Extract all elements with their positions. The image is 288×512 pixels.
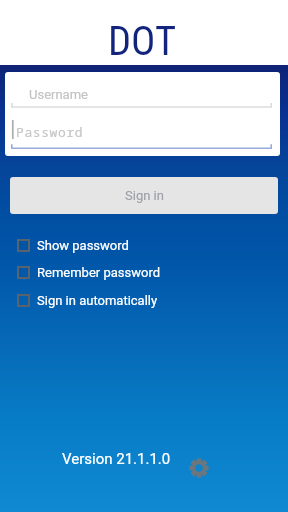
button[interactable] [186,455,212,481]
button[interactable]: Username [5,81,280,107]
staticText: Remember password [37,265,161,280]
staticText: DOT [108,17,177,64]
staticText: Sign in automatically [37,293,158,308]
button[interactable]: Sign in automatically [8,287,168,314]
button[interactable]: Sign in [10,177,278,214]
staticText: Username [29,87,88,102]
staticText: Password [16,123,84,141]
button[interactable]: Remember password [8,259,171,286]
staticText: Version 21.1.1.0 [62,450,171,468]
staticText: Sign in [125,188,164,203]
button[interactable]: Password [5,119,280,145]
staticText: Show password [37,238,129,253]
button[interactable]: Show password [8,232,139,259]
